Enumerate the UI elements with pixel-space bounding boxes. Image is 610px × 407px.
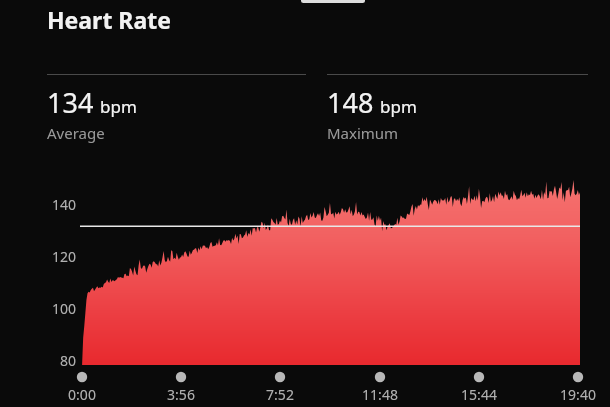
button[interactable]: 134 xyxy=(47,74,306,143)
button[interactable]: 148 xyxy=(327,74,588,143)
staticText: 7:52 xyxy=(250,385,310,404)
staticText: bpm xyxy=(100,95,137,118)
staticText: Maximum xyxy=(327,123,399,143)
staticText: 0:00 xyxy=(52,385,112,404)
staticText: 100 xyxy=(30,299,76,318)
staticText: 3:56 xyxy=(151,385,211,404)
staticText: 15:44 xyxy=(449,385,509,404)
staticText: 19:40 xyxy=(548,385,608,404)
button[interactable]: Heart rate chart xyxy=(0,0,610,407)
staticText: bpm xyxy=(380,95,417,118)
staticText: Average xyxy=(47,123,105,143)
staticText: 80 xyxy=(30,351,76,370)
staticText: 134 xyxy=(47,84,94,121)
staticText: 120 xyxy=(30,247,76,266)
staticText: Heart Rate xyxy=(47,4,171,35)
staticText: 11:48 xyxy=(350,385,410,404)
staticText: 148 xyxy=(327,84,374,121)
staticText: 140 xyxy=(30,195,76,214)
